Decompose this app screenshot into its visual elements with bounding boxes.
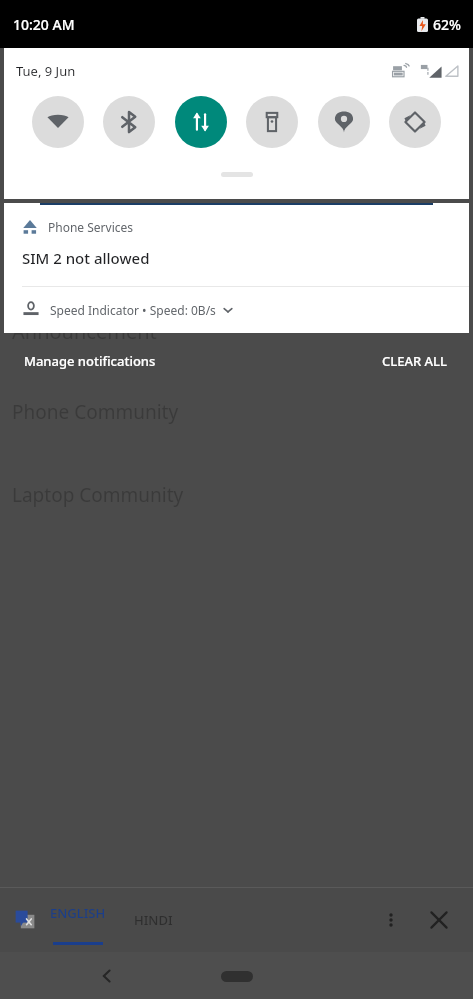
button[interactable]: Auto rotate: [389, 96, 441, 148]
staticText: 10:20 AM: [13, 15, 75, 34]
button[interactable]: More options: [371, 900, 411, 940]
staticText: Announcement: [12, 318, 157, 345]
staticText: ENGLISH: [50, 904, 106, 922]
button[interactable]: Wi-Fi: [32, 96, 84, 148]
staticText: Manage notifications: [24, 352, 156, 370]
button[interactable]: Location: [318, 96, 370, 148]
button[interactable]: ENGLISH: [50, 888, 106, 952]
button[interactable]: Flashlight: [246, 96, 298, 148]
staticText: 62%: [433, 15, 461, 34]
button[interactable]: Home: [201, 961, 273, 991]
staticText: Tue, 9 Jun: [16, 62, 76, 80]
staticText: SIM 2 not allowed: [22, 248, 150, 268]
staticText: Laptop Community: [12, 482, 184, 508]
button[interactable]: Close: [419, 900, 459, 940]
staticText: Phone Services: [48, 219, 134, 235]
button[interactable]: Speed Indicator • Speed: 0B/s: [4, 287, 469, 333]
button[interactable]: Manage notifications: [20, 348, 160, 374]
button[interactable]: HINDI: [134, 888, 173, 952]
button[interactable]: Bluetooth: [103, 96, 155, 148]
button[interactable]: Back: [85, 954, 129, 998]
staticText: Phone Community: [12, 399, 179, 425]
button[interactable]: Mobile data: [175, 96, 227, 148]
staticText: HINDI: [134, 911, 173, 929]
staticText: Speed Indicator • Speed: 0B/s: [50, 302, 216, 318]
staticText: CLEAR ALL: [382, 352, 447, 370]
button[interactable]: CLEAR ALL: [378, 348, 451, 374]
button[interactable]: Phone Services: [4, 205, 469, 286]
